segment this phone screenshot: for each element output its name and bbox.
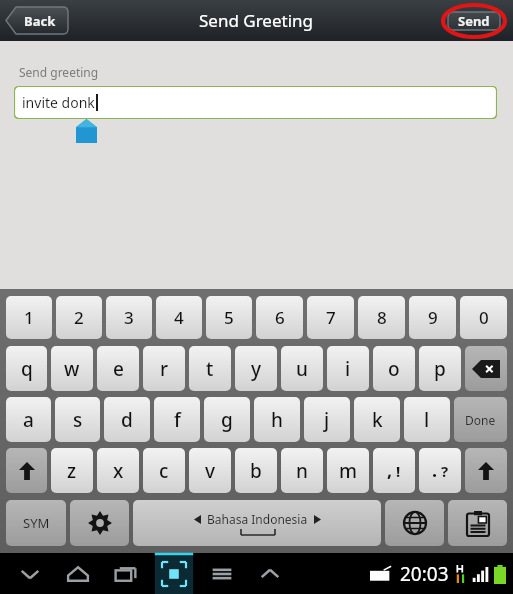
staticText: , [387, 458, 393, 483]
button[interactable]: r [143, 346, 185, 391]
staticText: w [64, 356, 80, 382]
button[interactable]: j [304, 397, 350, 442]
button[interactable]: Recent apps [102, 553, 150, 594]
button[interactable]: invite donk [14, 86, 497, 119]
staticText: i [345, 356, 351, 382]
staticText: s [73, 407, 83, 433]
staticText: 7 [326, 306, 336, 329]
button[interactable]: Show more [246, 553, 294, 594]
button[interactable]: c [143, 448, 185, 493]
button[interactable]: q [6, 346, 47, 391]
button[interactable]: 1 [6, 296, 52, 339]
button[interactable]: i [327, 346, 369, 391]
button[interactable]: h [254, 397, 300, 442]
button[interactable]: SYM [6, 500, 66, 546]
button[interactable]: Switch language [385, 500, 444, 546]
button[interactable]: g [204, 397, 250, 442]
staticText: z [67, 458, 77, 484]
button[interactable]: b [235, 448, 277, 493]
staticText: a [23, 407, 34, 433]
staticText: g [221, 407, 233, 433]
staticText: ! [396, 461, 401, 481]
button[interactable]: Bahasa Indonesia [133, 500, 381, 546]
staticText: y [251, 356, 262, 382]
staticText: invite donk [22, 93, 95, 112]
staticText: r [160, 356, 169, 382]
staticText: Bahasa Indonesia [207, 511, 308, 527]
button[interactable]: Done [454, 397, 507, 442]
button[interactable]: Send [443, 4, 505, 38]
staticText: 4 [174, 306, 184, 329]
button[interactable]: 9 [409, 296, 456, 339]
staticText: 8 [377, 306, 387, 329]
button[interactable]: 4 [156, 296, 202, 339]
staticText: 20:03 [400, 561, 449, 587]
button[interactable]: e [97, 346, 139, 391]
staticText: q [21, 356, 33, 382]
button[interactable]: Home [54, 553, 102, 594]
button[interactable]: 0 [460, 296, 507, 339]
button[interactable]: bksp [465, 346, 507, 391]
button[interactable]: . [419, 448, 461, 493]
staticText: b [250, 458, 262, 484]
staticText: 2 [74, 306, 84, 329]
staticText: 3 [124, 306, 134, 329]
button[interactable]: Clipboard [448, 500, 507, 546]
button[interactable]: y [235, 346, 277, 391]
button[interactable]: l [404, 397, 450, 442]
staticText: p [434, 356, 446, 382]
staticText: ? [441, 461, 449, 481]
staticText: e [113, 356, 124, 382]
button[interactable]: x [97, 448, 139, 493]
button[interactable]: 2 [56, 296, 102, 339]
button[interactable]: t [189, 346, 231, 391]
staticText: Send [458, 12, 490, 30]
button[interactable]: Hide keyboard [6, 553, 54, 594]
button[interactable]: n [281, 448, 323, 493]
button[interactable]: Menu [198, 553, 246, 594]
staticText: v [205, 458, 216, 484]
staticText: o [388, 356, 400, 382]
staticText: Back [24, 12, 56, 30]
staticText: Send greeting [19, 64, 99, 80]
staticText: n [296, 458, 308, 484]
button[interactable]: Back [6, 6, 68, 35]
staticText: l [424, 407, 430, 433]
staticText: . [432, 458, 438, 483]
button[interactable]: 7 [307, 296, 354, 339]
button[interactable]: 8 [358, 296, 405, 339]
button[interactable]: 6 [256, 296, 303, 339]
button[interactable]: z [51, 448, 93, 493]
staticText: u [296, 356, 308, 382]
button[interactable]: w [51, 346, 93, 391]
button[interactable]: o [373, 346, 415, 391]
button[interactable]: k [354, 397, 400, 442]
staticText: 1 [24, 306, 34, 329]
staticText: j [324, 407, 330, 433]
staticText: 5 [224, 306, 234, 329]
button[interactable]: shift [6, 448, 47, 493]
button[interactable]: 3 [106, 296, 152, 339]
staticText: c [159, 458, 169, 484]
button[interactable]: f [154, 397, 200, 442]
staticText: k [372, 407, 383, 433]
button[interactable]: v [189, 448, 231, 493]
button[interactable]: m [327, 448, 369, 493]
button[interactable]: shift [465, 448, 507, 493]
button[interactable]: , [373, 448, 415, 493]
staticText: 6 [275, 306, 285, 329]
staticText: d [121, 407, 133, 433]
staticText: x [113, 458, 124, 484]
staticText: h [271, 407, 283, 433]
staticText: Done [465, 412, 496, 428]
staticText: 9 [428, 306, 438, 329]
button[interactable]: s [55, 397, 100, 442]
button[interactable]: p [419, 346, 461, 391]
button[interactable]: d [104, 397, 150, 442]
button[interactable]: Choose input method [150, 553, 198, 594]
button[interactable]: u [281, 346, 323, 391]
button[interactable]: a [6, 397, 51, 442]
staticText: Send Greeting [199, 9, 314, 32]
button[interactable]: 5 [206, 296, 252, 339]
button[interactable]: Settings [70, 500, 129, 546]
